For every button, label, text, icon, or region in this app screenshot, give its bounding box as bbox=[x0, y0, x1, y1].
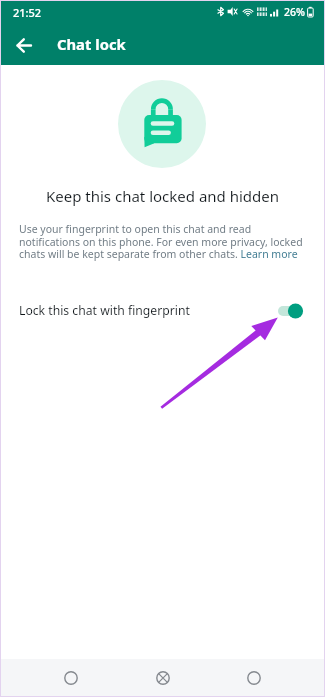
button[interactable]: Lock this chat with fingerprint bbox=[0, 293, 325, 327]
button[interactable]: Lock this chat with fingerprint bbox=[278, 301, 304, 321]
button[interactable]: Back bbox=[9, 31, 37, 59]
staticText: Use your fingerprint to open this chat a… bbox=[19, 222, 311, 261]
button[interactable]: Recent apps bbox=[44, 659, 98, 697]
staticText: 26% bbox=[284, 5, 305, 19]
button[interactable]: Home bbox=[136, 659, 190, 697]
staticText: Keep this chat locked and hidden bbox=[0, 186, 325, 206]
staticText: Chat lock bbox=[57, 34, 126, 54]
staticText: 21:52 bbox=[13, 5, 42, 20]
button[interactable]: Back bbox=[227, 659, 281, 697]
staticText: Lock this chat with fingerprint bbox=[19, 302, 190, 319]
